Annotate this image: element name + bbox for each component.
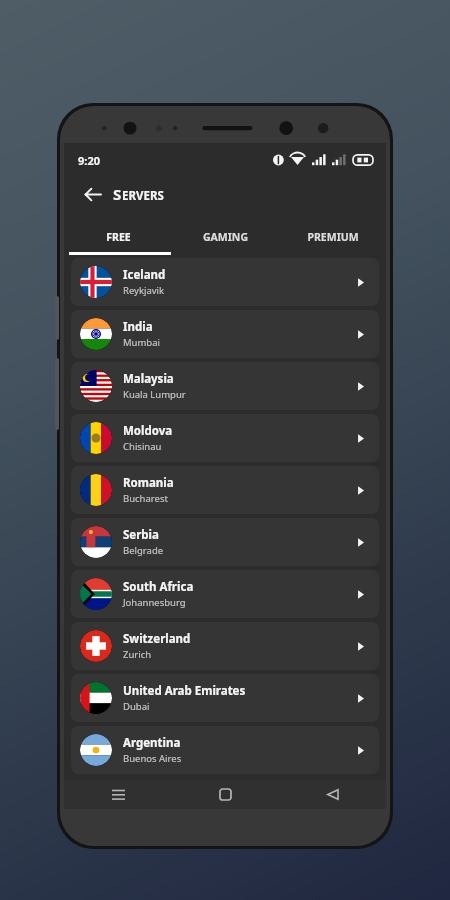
button[interactable]: Serbia bbox=[71, 518, 379, 566]
button[interactable]: FREE bbox=[64, 218, 172, 255]
staticText: FREE bbox=[106, 230, 131, 244]
staticText: United Arab Emirates bbox=[123, 683, 246, 699]
staticText: S bbox=[113, 184, 122, 204]
button[interactable]: South Africa bbox=[71, 570, 379, 618]
button[interactable]: Switzerland bbox=[71, 622, 379, 670]
button[interactable]: Moldova bbox=[71, 414, 379, 462]
button[interactable]: United Arab Emirates bbox=[71, 674, 379, 722]
button[interactable]: GAMING bbox=[172, 218, 279, 255]
staticText: Romania bbox=[123, 475, 174, 491]
staticText: South Africa bbox=[123, 579, 194, 595]
button[interactable]: PREMIUM bbox=[279, 218, 386, 255]
staticText: 9:20 bbox=[78, 153, 100, 168]
staticText: Zurich bbox=[123, 648, 152, 661]
staticText: Bucharest bbox=[123, 492, 168, 505]
staticText: Mumbai bbox=[123, 336, 160, 349]
staticText: Dubai bbox=[123, 700, 150, 713]
button[interactable]: Romania bbox=[71, 466, 379, 514]
staticText: Kuala Lumpur bbox=[123, 388, 186, 401]
staticText: PREMIUM bbox=[307, 230, 359, 244]
staticText: Malaysia bbox=[123, 371, 174, 387]
staticText: India bbox=[123, 319, 153, 335]
button[interactable]: India bbox=[71, 310, 379, 358]
button[interactable]: Malaysia bbox=[71, 362, 379, 410]
button[interactable]: Argentina bbox=[71, 726, 379, 774]
staticText: Serbia bbox=[123, 527, 159, 543]
staticText: Reykjavik bbox=[123, 284, 165, 297]
button[interactable]: Recent apps bbox=[64, 780, 172, 809]
staticText: Argentina bbox=[123, 735, 181, 751]
staticText: Switzerland bbox=[123, 631, 191, 647]
staticText: Buenos Aires bbox=[123, 752, 182, 765]
staticText: Moldova bbox=[123, 423, 173, 439]
staticText: Johannesburg bbox=[123, 596, 186, 609]
button[interactable]: Back bbox=[77, 179, 107, 209]
staticText: Belgrade bbox=[123, 544, 164, 557]
button[interactable]: Iceland bbox=[71, 258, 379, 306]
staticText: Iceland bbox=[123, 267, 166, 283]
staticText: Chisinau bbox=[123, 440, 162, 453]
staticText: ERVERS bbox=[122, 188, 164, 204]
button[interactable]: Back bbox=[279, 780, 386, 809]
staticText: GAMING bbox=[203, 230, 248, 244]
button[interactable]: Home bbox=[172, 780, 279, 809]
